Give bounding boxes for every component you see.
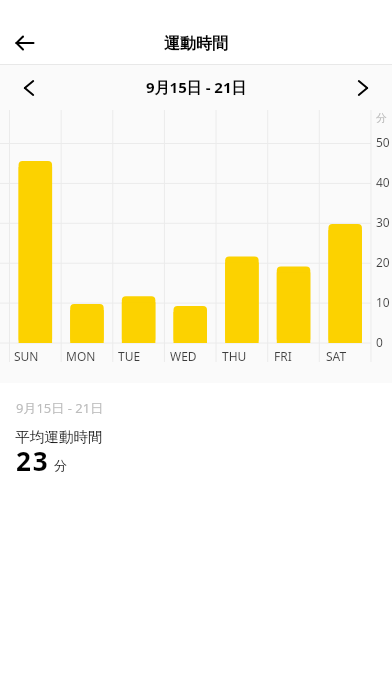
button[interactable]: Next week [347,72,379,104]
button[interactable]: Back [9,27,41,59]
staticText: 30 [376,214,390,230]
staticText: THU [222,348,247,364]
staticText: 9月15日 - 21日 [146,77,247,97]
staticText: 10 [376,294,390,310]
staticText: 50 [376,134,390,150]
button[interactable]: THU [218,110,270,362]
button[interactable]: TUE [114,110,166,362]
button[interactable]: Previous week [13,72,45,104]
staticText: 分 [54,457,67,473]
staticText: SAT [326,348,347,364]
button[interactable]: SAT [322,110,374,362]
staticText: MON [66,348,96,364]
staticText: WED [170,348,197,364]
staticText: 運動時間 [164,34,228,54]
button[interactable]: WED [166,110,218,362]
staticText: 分 [376,111,387,125]
staticText: 23 [16,443,50,478]
staticText: TUE [118,348,141,364]
staticText: 平均運動時間 [15,428,103,446]
staticText: FRI [274,348,292,364]
button[interactable]: FRI [270,110,322,362]
button[interactable]: MON [62,110,114,362]
button[interactable]: SUN [10,110,62,362]
staticText: 40 [376,174,390,190]
staticText: 9月15日 - 21日 [16,399,104,417]
staticText: SUN [14,348,39,364]
staticText: 0 [376,334,383,350]
staticText: 20 [376,254,390,270]
